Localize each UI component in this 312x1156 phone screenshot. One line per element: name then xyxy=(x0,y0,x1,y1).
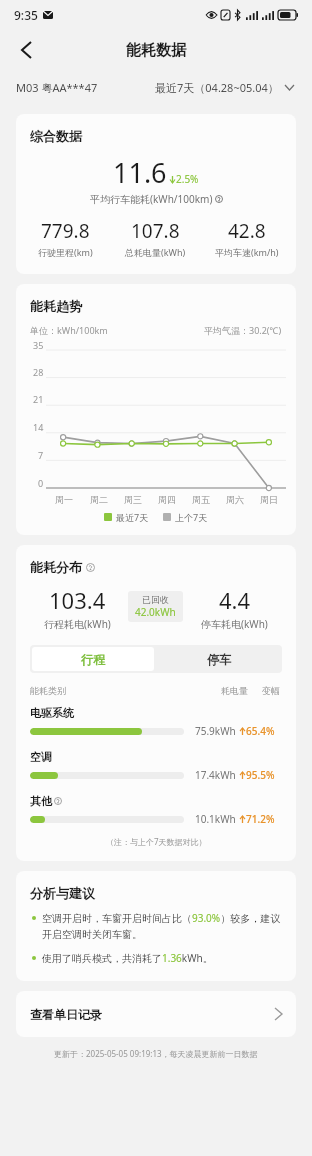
staticText: 7 xyxy=(38,449,44,461)
staticText: 单位：kWh/100km xyxy=(30,324,108,336)
staticText: 平均行车能耗(kWh/100km) xyxy=(90,192,213,206)
staticText: 107.8 xyxy=(131,218,180,244)
staticText: 9:35 xyxy=(14,7,38,23)
staticText: 空调开启时，车窗开启时间占比（93.0%）较多，建议开启空调时关闭车窗。 xyxy=(42,911,282,941)
staticText: 42.0kWh xyxy=(135,605,176,619)
staticText: 查看单日记录 xyxy=(30,1007,102,1022)
staticText: 17.4kWh xyxy=(195,768,236,782)
staticText: 能耗数据 xyxy=(126,41,186,60)
staticText: 能耗分布 xyxy=(30,559,82,575)
staticText: 周四 xyxy=(158,494,176,505)
staticText: 11.6 xyxy=(113,154,167,191)
button[interactable]: 行程 xyxy=(32,647,154,671)
staticText: 最近7天（04.28~05.04） xyxy=(155,80,279,95)
staticText: 95.5% xyxy=(246,768,275,782)
button[interactable]: M03 粤AA***47 xyxy=(0,70,312,104)
staticText: 10.1kWh xyxy=(195,812,236,826)
staticText: 平均车速(km/h) xyxy=(215,246,279,258)
staticText: 最近7天 xyxy=(116,511,149,523)
button[interactable]: 查看单日记录 xyxy=(16,991,296,1037)
staticText: 779.8 xyxy=(41,218,90,244)
staticText: 其他 xyxy=(30,794,52,808)
staticText: 空调 xyxy=(30,750,52,764)
staticText: 71.2% xyxy=(246,812,275,826)
staticText: 14 xyxy=(33,421,44,433)
staticText: 行程耗电(kWh) xyxy=(44,617,111,631)
staticText: 能耗类别 xyxy=(30,685,66,696)
staticText: 总耗电量(kWh) xyxy=(125,246,186,258)
staticText: 周日 xyxy=(260,494,278,505)
staticText: 65.4% xyxy=(246,724,275,738)
staticText: 能耗趋势 xyxy=(30,298,82,314)
staticText: 分析与建议 xyxy=(30,885,95,901)
staticText: 综合数据 xyxy=(30,128,82,144)
staticText: 周六 xyxy=(226,494,244,505)
staticText: 行驶里程(km) xyxy=(38,246,93,258)
staticText: 周三 xyxy=(124,494,142,505)
staticText: M03 粤AA***47 xyxy=(16,80,98,95)
staticText: 周一 xyxy=(55,494,73,505)
staticText: 更新于：2025-05-05 09:19:13，每天凌晨更新前一日数据 xyxy=(54,1048,258,1059)
staticText: 周五 xyxy=(192,494,210,505)
staticText: 2.5% xyxy=(176,172,199,186)
button[interactable]: Back xyxy=(8,32,44,68)
staticText: 103.4 xyxy=(49,585,106,615)
staticText: 21 xyxy=(33,393,44,405)
staticText: 35 xyxy=(33,339,44,351)
staticText: 75.9kWh xyxy=(195,724,236,738)
staticText: 变幅 xyxy=(262,685,280,696)
staticText: 电驱系统 xyxy=(30,706,74,720)
staticText: 耗电量 xyxy=(221,685,248,696)
staticText: 停车耗电(kWh) xyxy=(201,617,268,631)
staticText: 停车 xyxy=(207,652,231,667)
staticText: 0 xyxy=(38,477,44,489)
staticText: 4.4 xyxy=(219,585,251,615)
staticText: 平均气温：30.2(℃) xyxy=(204,324,282,336)
staticText: 已回收 xyxy=(142,594,169,605)
staticText: 使用了哨兵模式，共消耗了1.36kWh。 xyxy=(42,951,213,965)
button[interactable]: 停车 xyxy=(156,645,282,673)
staticText: （注：与上个7天数据对比） xyxy=(106,836,207,847)
staticText: 42.8 xyxy=(228,218,266,244)
staticText: 行程 xyxy=(81,652,105,667)
staticText: 上个7天 xyxy=(175,511,208,523)
staticText: 周二 xyxy=(90,494,108,505)
staticText: 28 xyxy=(33,366,44,378)
